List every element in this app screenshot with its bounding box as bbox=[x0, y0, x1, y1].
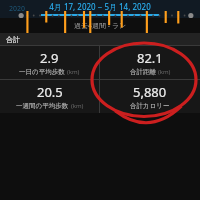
staticText: 2020 bbox=[9, 4, 26, 14]
staticText: 82.1 bbox=[137, 49, 163, 67]
staticText: 一週間の平均歩数 bbox=[16, 102, 69, 110]
button[interactable]: 82.1 bbox=[100, 46, 200, 79]
staticText: 過去4週間 - ラン bbox=[74, 21, 127, 31]
staticText: 合計 bbox=[6, 35, 20, 44]
button[interactable]: 2020 bbox=[0, 0, 34, 18]
staticText: (km) bbox=[71, 102, 84, 110]
staticText: 合計カロリー bbox=[130, 102, 170, 110]
staticText: 合計距離 bbox=[130, 68, 156, 76]
staticText: (km) bbox=[67, 68, 80, 76]
button[interactable]: 4月 17, 2020 − 5月 14, 2020 bbox=[38, 0, 162, 18]
staticText: 5,880 bbox=[133, 83, 167, 101]
button[interactable]: 20.5 bbox=[0, 80, 99, 113]
staticText: 20.5 bbox=[37, 83, 63, 101]
staticText: 4月 17, 2020 − 5月 14, 2020 bbox=[49, 1, 151, 12]
staticText: 2.9 bbox=[40, 49, 59, 67]
button[interactable]: 2.9 bbox=[0, 46, 99, 79]
button[interactable]: 5,880 bbox=[100, 80, 200, 113]
staticText: 一日の平均歩数 bbox=[19, 68, 65, 76]
staticText: (km) bbox=[158, 68, 171, 76]
